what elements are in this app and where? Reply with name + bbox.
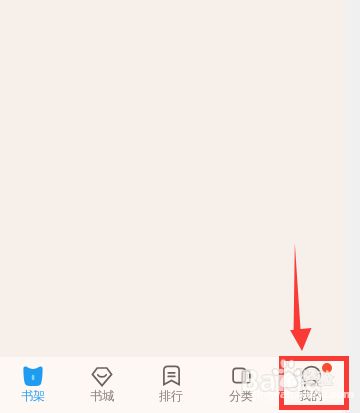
other: Ranking: [162, 366, 181, 385]
other: Profile: [302, 366, 321, 385]
button[interactable]: Bookshelf: [0, 357, 67, 413]
other: Bookshelf: [23, 366, 43, 386]
staticText: 经验: [301, 369, 333, 389]
staticText: 书城: [90, 388, 114, 403]
staticText: Baidu: [240, 360, 323, 399]
staticText: jingyan.baidu.com: [253, 386, 355, 401]
staticText: Baidu: [240, 360, 323, 399]
button[interactable]: Ranking: [136, 357, 206, 413]
button[interactable]: Bookstore: [67, 357, 136, 413]
other: Bookstore: [92, 366, 112, 386]
button[interactable]: Profile: [276, 357, 346, 413]
staticText: 经验: [301, 369, 333, 389]
staticText: 书架: [21, 388, 45, 403]
staticText: 分类: [229, 388, 253, 403]
staticText: 排行: [159, 388, 183, 403]
button[interactable]: Category: [206, 357, 276, 413]
other: Category: [232, 366, 251, 385]
staticText: 我的: [299, 388, 323, 403]
